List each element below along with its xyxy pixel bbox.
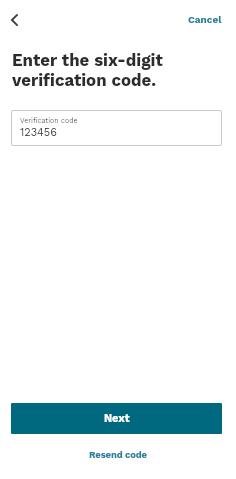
button[interactable]: Verification code xyxy=(11,110,222,146)
staticText: Enter the six-digit verification code. xyxy=(12,50,163,90)
staticText: Next xyxy=(104,412,130,425)
staticText: Resend code xyxy=(89,449,147,460)
button[interactable]: Back xyxy=(0,5,29,35)
staticText: Verification code xyxy=(20,116,78,124)
button[interactable]: Cancel xyxy=(174,8,236,32)
button[interactable]: Next xyxy=(11,403,222,434)
staticText: 123456 xyxy=(20,126,57,139)
button[interactable]: Resend code xyxy=(77,445,159,464)
staticText: Cancel xyxy=(188,14,222,26)
